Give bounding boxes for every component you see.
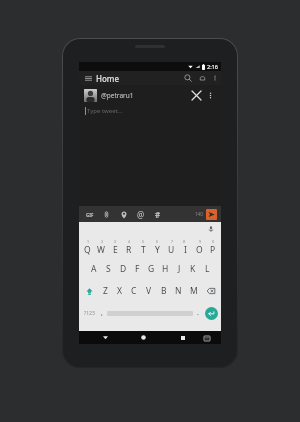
button[interactable]: Home bbox=[137, 331, 150, 344]
staticText: C bbox=[131, 285, 137, 297]
button[interactable]: Attach media bbox=[100, 208, 113, 221]
staticText: Home bbox=[96, 73, 120, 84]
button[interactable]: A bbox=[86, 258, 101, 280]
staticText: K bbox=[190, 263, 196, 275]
button[interactable]: Backspace bbox=[201, 280, 220, 302]
staticText: O bbox=[196, 244, 203, 256]
button[interactable]: Back bbox=[99, 331, 112, 344]
staticText: GIF bbox=[86, 212, 94, 218]
staticText: 0 bbox=[212, 239, 215, 244]
staticText: I bbox=[184, 244, 187, 256]
staticText: ?123 bbox=[84, 310, 95, 317]
button[interactable]: F bbox=[130, 258, 144, 280]
staticText: D bbox=[120, 263, 127, 275]
button[interactable]: C bbox=[126, 280, 141, 302]
staticText: @ bbox=[137, 209, 145, 220]
button[interactable]: More options bbox=[209, 72, 221, 84]
staticText: Y bbox=[155, 244, 160, 256]
button[interactable]: Search bbox=[181, 71, 195, 85]
button[interactable]: N bbox=[171, 280, 186, 302]
button[interactable]: Comma bbox=[97, 302, 107, 324]
staticText: R bbox=[126, 244, 132, 256]
button[interactable]: 1 bbox=[80, 236, 94, 258]
button[interactable]: Profile photo bbox=[84, 89, 97, 102]
staticText: L bbox=[205, 263, 210, 275]
button[interactable]: Send tweet bbox=[206, 209, 217, 220]
button[interactable]: 4 bbox=[122, 236, 136, 258]
staticText: G bbox=[148, 263, 155, 275]
button[interactable]: Period bbox=[193, 302, 203, 324]
button[interactable]: More options bbox=[204, 89, 216, 101]
button[interactable]: 8 bbox=[178, 236, 192, 258]
button[interactable]: K bbox=[186, 258, 200, 280]
button[interactable]: 6 bbox=[150, 236, 164, 258]
staticText: 8 bbox=[183, 239, 186, 244]
button[interactable]: ?123 bbox=[81, 302, 97, 324]
staticText: Type tweet... bbox=[87, 107, 123, 115]
staticText: 1 bbox=[87, 239, 90, 244]
button[interactable]: Mention someone bbox=[134, 208, 147, 221]
staticText: J bbox=[178, 263, 181, 275]
button[interactable]: 0 bbox=[206, 236, 220, 258]
button[interactable]: Add location bbox=[117, 208, 130, 221]
staticText: , bbox=[101, 308, 103, 318]
button[interactable]: 2 bbox=[94, 236, 108, 258]
button[interactable]: J bbox=[172, 258, 186, 280]
staticText: B bbox=[161, 285, 167, 297]
staticText: 9 bbox=[199, 239, 202, 244]
button[interactable]: 5 bbox=[136, 236, 150, 258]
button[interactable]: L bbox=[200, 258, 214, 280]
button[interactable]: D bbox=[116, 258, 130, 280]
staticText: 140 bbox=[195, 211, 203, 217]
staticText: V bbox=[146, 285, 152, 297]
staticText: Q bbox=[84, 244, 91, 256]
staticText: F bbox=[135, 263, 140, 275]
button[interactable]: B bbox=[156, 280, 171, 302]
staticText: 2:16 bbox=[207, 63, 218, 70]
staticText: 2 bbox=[101, 239, 104, 244]
staticText: T bbox=[141, 244, 146, 256]
button[interactable]: 3 bbox=[108, 236, 122, 258]
button[interactable]: S bbox=[101, 258, 116, 280]
button[interactable]: G bbox=[144, 258, 158, 280]
staticText: # bbox=[155, 209, 161, 220]
button[interactable]: Z bbox=[98, 280, 112, 302]
staticText: P bbox=[210, 244, 216, 256]
button[interactable]: Recent apps bbox=[176, 331, 189, 344]
staticText: N bbox=[175, 285, 182, 297]
staticText: . bbox=[197, 308, 199, 318]
button[interactable]: X bbox=[112, 280, 126, 302]
button[interactable]: 9 bbox=[192, 236, 206, 258]
staticText: W bbox=[97, 244, 105, 256]
staticText: S bbox=[106, 263, 111, 275]
staticText: Z bbox=[103, 285, 108, 297]
button[interactable]: Add GIF bbox=[83, 208, 96, 221]
button[interactable]: Close bbox=[188, 87, 204, 103]
staticText: A bbox=[91, 263, 97, 275]
button[interactable]: Voice input bbox=[206, 224, 216, 234]
button[interactable]: 7 bbox=[164, 236, 178, 258]
button[interactable]: Add hashtag bbox=[151, 208, 164, 221]
staticText: U bbox=[168, 244, 175, 256]
staticText: 6 bbox=[156, 239, 159, 244]
staticText: @petraru1 bbox=[101, 91, 134, 100]
button[interactable]: M bbox=[186, 280, 201, 302]
staticText: 4 bbox=[128, 239, 131, 244]
staticText: M bbox=[190, 285, 198, 297]
button[interactable]: Shift bbox=[80, 280, 98, 302]
button[interactable]: Enter bbox=[203, 305, 219, 321]
button[interactable]: H bbox=[158, 258, 172, 280]
staticText: 5 bbox=[142, 239, 145, 244]
staticText: E bbox=[113, 244, 118, 256]
button[interactable]: Hide keyboard bbox=[201, 332, 213, 344]
button[interactable]: Open navigation drawer bbox=[83, 73, 93, 83]
staticText: X bbox=[117, 285, 122, 297]
button[interactable]: Notifications bbox=[195, 71, 209, 85]
staticText: 7 bbox=[171, 239, 174, 244]
staticText: 3 bbox=[114, 239, 117, 244]
button[interactable]: V bbox=[141, 280, 156, 302]
staticText: H bbox=[162, 263, 169, 275]
